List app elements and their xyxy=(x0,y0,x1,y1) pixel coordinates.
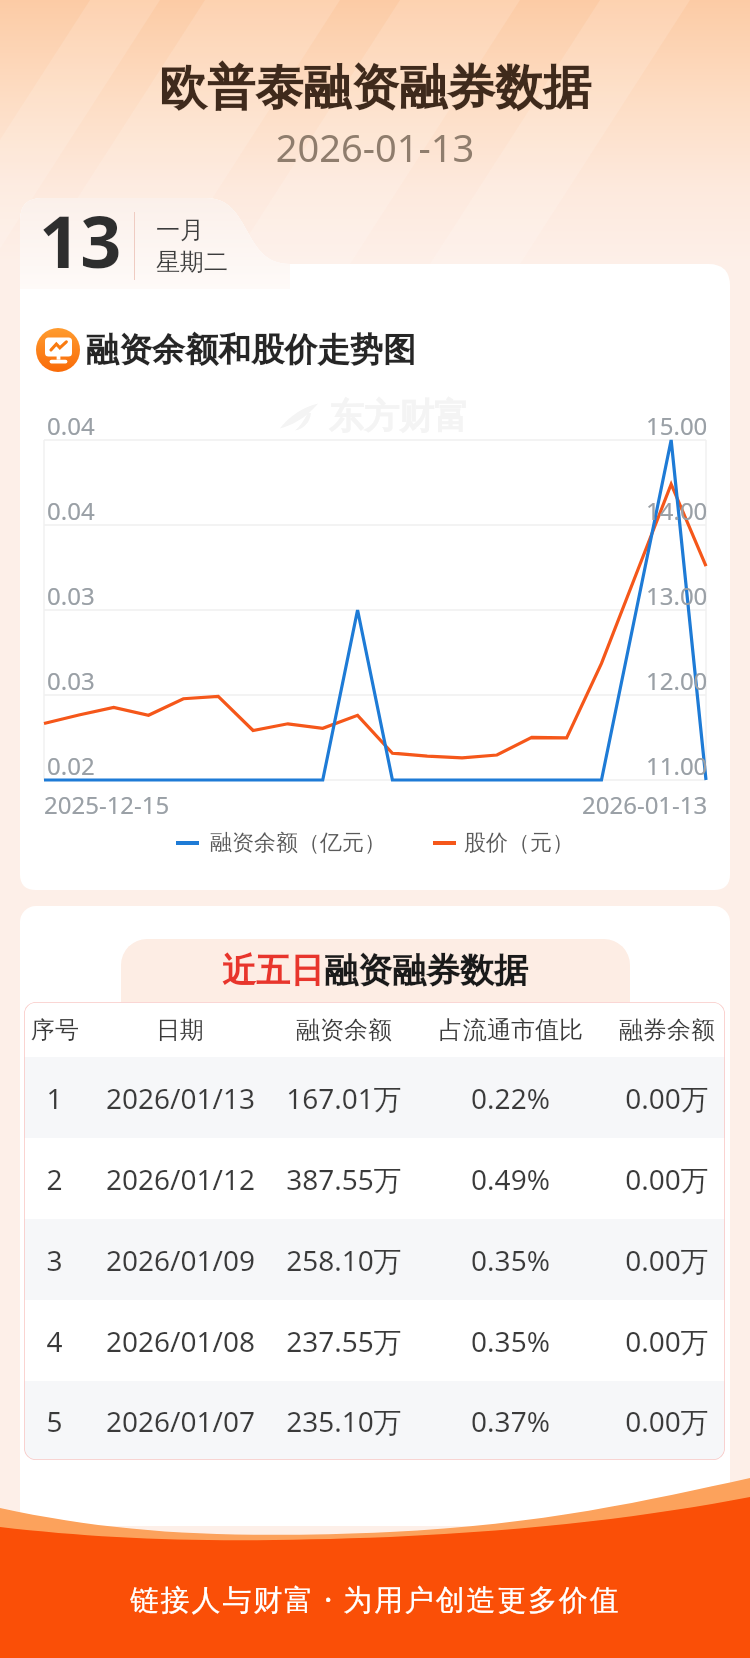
staticText: 0.35% xyxy=(471,1322,550,1360)
staticText: 2026/01/07 xyxy=(106,1402,255,1440)
staticText: 237.55万 xyxy=(286,1322,402,1360)
staticText: 0.35% xyxy=(471,1241,550,1279)
staticText: 2026-01-13 xyxy=(0,121,750,173)
staticText: 星期二 xyxy=(156,247,228,277)
staticText: 5 xyxy=(46,1402,63,1440)
staticText: 0.37% xyxy=(471,1402,550,1440)
button[interactable]: 5 xyxy=(24,1381,725,1460)
staticText: 0.49% xyxy=(471,1160,550,1198)
staticText: 167.01万 xyxy=(286,1079,402,1117)
staticText: 融资余额和股价走势图 xyxy=(86,329,416,371)
staticText: 2025-12-15 xyxy=(44,788,170,821)
staticText: 股价（元） xyxy=(464,829,574,857)
staticText: 2026/01/08 xyxy=(106,1322,255,1360)
staticText: 融券余额 xyxy=(619,1015,715,1045)
other: 图表 xyxy=(36,328,80,372)
staticText: 12.00 xyxy=(646,664,708,697)
button[interactable]: 4 xyxy=(24,1300,725,1381)
button[interactable]: 3 xyxy=(24,1219,725,1300)
staticText: 14.00 xyxy=(646,494,708,527)
staticText: 0.04 xyxy=(47,409,95,442)
staticText: 近五日 xyxy=(222,949,324,992)
staticText: 1 xyxy=(46,1079,63,1117)
staticText: 欧普泰融资融券数据 xyxy=(0,58,750,118)
staticText: 0.02 xyxy=(47,749,95,782)
staticText: 融资融券数据 xyxy=(324,949,528,992)
staticText: 13.00 xyxy=(646,579,708,612)
staticText: 0.03 xyxy=(47,664,95,697)
staticText: 日期 xyxy=(156,1015,204,1045)
button[interactable]: 链接人与财富 · 为用户创造更多价值 xyxy=(130,1579,621,1619)
staticText: 258.10万 xyxy=(286,1241,402,1279)
staticText: 2026/01/12 xyxy=(106,1160,255,1198)
staticText: 0.00万 xyxy=(625,1322,709,1360)
button[interactable]: 2 xyxy=(24,1138,725,1219)
staticText: 2026/01/09 xyxy=(106,1241,255,1279)
staticText: 东方财富 xyxy=(329,1224,469,1268)
staticText: 一月 xyxy=(156,215,204,245)
staticText: 0.22% xyxy=(471,1079,550,1117)
staticText: 3 xyxy=(46,1241,63,1279)
staticText: 235.10万 xyxy=(286,1402,402,1440)
staticText: 0.04 xyxy=(47,494,95,527)
button[interactable]: 1 xyxy=(24,1057,725,1138)
staticText: 融资余额（亿元） xyxy=(210,829,386,857)
staticText: 2026/01/13 xyxy=(106,1079,255,1117)
staticText: 2 xyxy=(46,1160,63,1198)
staticText: 0.00万 xyxy=(625,1402,709,1440)
staticText: 2026-01-13 xyxy=(582,788,708,821)
button[interactable]: 序号 xyxy=(24,1002,725,1057)
staticText: 东方财富 xyxy=(329,394,469,438)
staticText: 序号 xyxy=(31,1015,79,1045)
staticText: 0.03 xyxy=(47,579,95,612)
staticText: 13 xyxy=(39,191,122,289)
staticText: 0.00万 xyxy=(625,1079,709,1117)
staticText: 0.00万 xyxy=(625,1160,709,1198)
staticText: 融资余额 xyxy=(296,1015,392,1045)
staticText: 387.55万 xyxy=(286,1160,402,1198)
staticText: 0.00万 xyxy=(625,1241,709,1279)
staticText: 4 xyxy=(46,1322,63,1360)
staticText: 11.00 xyxy=(646,749,708,782)
staticText: 15.00 xyxy=(646,409,708,442)
staticText: 占流通市值比 xyxy=(439,1015,583,1045)
button[interactable]: 图表 xyxy=(36,328,416,372)
